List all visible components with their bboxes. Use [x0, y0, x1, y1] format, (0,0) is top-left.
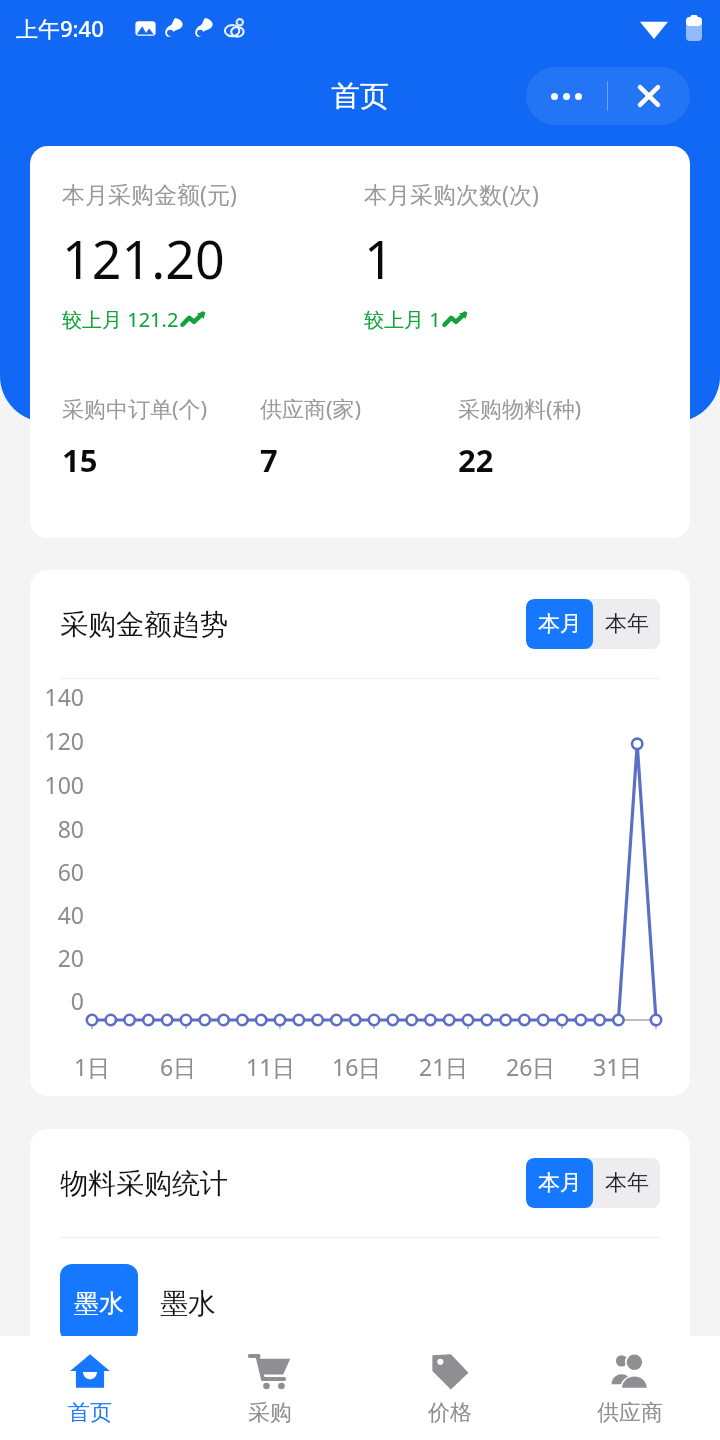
staticText: 80 [30, 813, 84, 844]
staticText: 物料采购统计 [60, 1166, 228, 1201]
staticText: 11日 [246, 1051, 296, 1082]
staticText: 7 [260, 439, 278, 481]
staticText: 16日 [332, 1051, 382, 1082]
button[interactable]: Close [608, 67, 690, 125]
button[interactable]: 墨水 [60, 1264, 690, 1342]
button[interactable]: 价格 [360, 1336, 540, 1440]
staticText: 墨水 [160, 1286, 216, 1321]
staticText: 31日 [593, 1051, 643, 1082]
staticText: 较上月 121.2 [62, 306, 179, 333]
staticText: 15 [62, 439, 98, 481]
staticText: 上午9:40 [16, 13, 104, 43]
button[interactable]: 首页 [0, 1336, 180, 1440]
button[interactable]: 供应商 [540, 1336, 720, 1440]
button[interactable]: 本年 [593, 1158, 660, 1208]
staticText: 26日 [506, 1051, 556, 1082]
button[interactable]: 采购 [180, 1336, 360, 1440]
staticText: 墨水 [74, 1288, 124, 1319]
staticText: 供应商(家) [260, 393, 362, 423]
staticText: 本月采购次数(次) [364, 178, 539, 209]
staticText: 140 [30, 681, 84, 712]
staticText: 本年 [605, 610, 649, 638]
staticText: 价格 [428, 1399, 472, 1427]
staticText: 本年 [605, 1169, 649, 1197]
staticText: 采购中订单(个) [62, 393, 208, 423]
staticText: 121.20 [62, 223, 225, 294]
button[interactable]: 本月采购金额(元) [30, 146, 690, 538]
staticText: 100 [30, 769, 84, 800]
staticText: 1日 [74, 1051, 111, 1082]
staticText: 6日 [160, 1051, 197, 1082]
staticText: 60 [30, 856, 84, 887]
staticText: 较上月 1 [364, 306, 441, 333]
staticText: 采购物料(种) [458, 393, 582, 423]
staticText: 本月 [538, 1169, 582, 1197]
staticText: 20 [30, 942, 84, 973]
staticText: 首页 [331, 78, 389, 115]
staticText: 40 [30, 899, 84, 930]
staticText: 供应商 [597, 1399, 663, 1427]
staticText: 21日 [419, 1051, 469, 1082]
staticText: 首页 [68, 1399, 112, 1427]
staticText: 22 [458, 439, 494, 481]
button[interactable]: 本月 [526, 599, 593, 649]
staticText: 采购金额趋势 [60, 607, 228, 642]
staticText: 120 [30, 725, 84, 756]
staticText: 本月 [538, 610, 582, 638]
staticText: 采购 [248, 1399, 292, 1427]
button[interactable]: 本月 [526, 1158, 593, 1208]
button[interactable]: 本年 [593, 599, 660, 649]
staticText: 0 [30, 985, 84, 1016]
button[interactable]: More options [526, 67, 607, 125]
staticText: 本月采购金额(元) [62, 178, 237, 209]
staticText: 1 [364, 223, 394, 294]
